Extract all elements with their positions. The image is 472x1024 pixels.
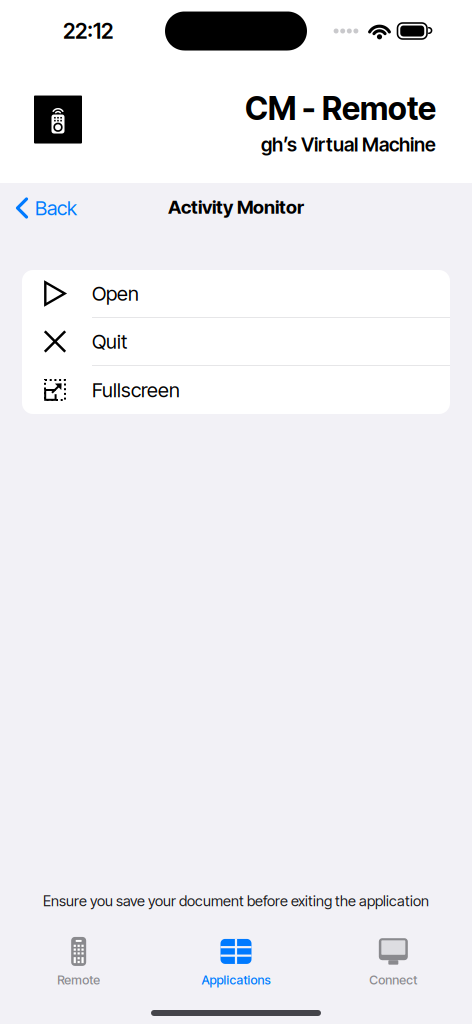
button[interactable]: Open	[22, 270, 450, 318]
staticText: Connect	[369, 972, 417, 988]
staticText: Applications	[201, 972, 270, 988]
button[interactable]: Connect	[315, 934, 472, 988]
staticText: Open	[92, 281, 139, 306]
button[interactable]: Applications	[157, 934, 315, 988]
staticText: gh’s Virtual Machine	[261, 133, 436, 156]
staticText: Quit	[92, 329, 127, 354]
staticText: CM - Remote	[245, 89, 436, 128]
button[interactable]: Quit	[22, 318, 450, 366]
staticText: 22:12	[63, 18, 113, 44]
button[interactable]: Fullscreen	[22, 366, 450, 414]
button[interactable]: Remote	[0, 934, 157, 988]
staticText: Activity Monitor	[168, 196, 304, 218]
staticText: Remote	[57, 972, 100, 988]
staticText: Ensure you save your document before exi…	[43, 892, 429, 910]
staticText: Fullscreen	[92, 378, 180, 402]
button[interactable]: Back	[0, 189, 77, 231]
staticText: Back	[35, 196, 77, 220]
